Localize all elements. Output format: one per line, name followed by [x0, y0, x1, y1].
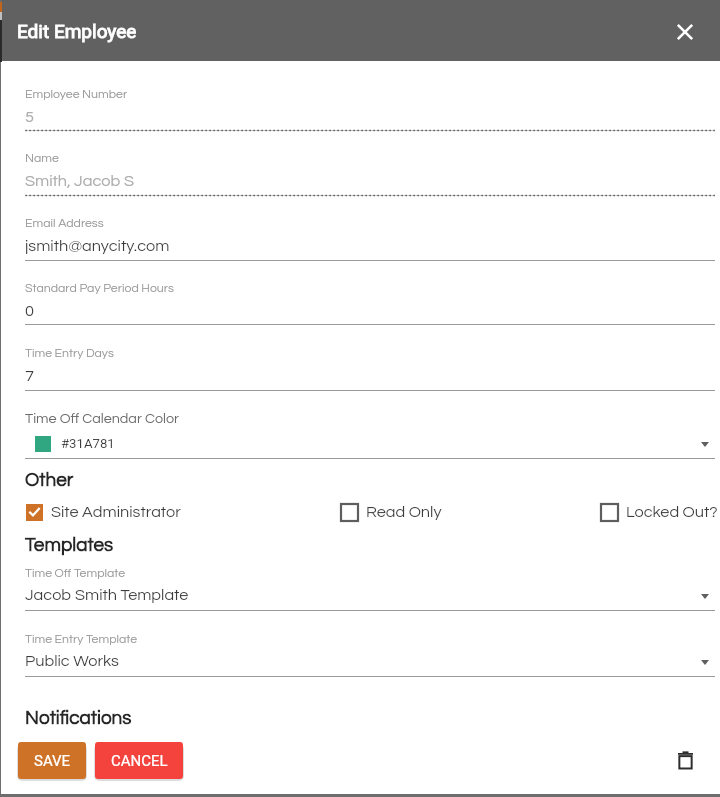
staticText: Edit Employee: [17, 20, 137, 42]
button[interactable]: [25, 561, 715, 614]
button[interactable]: [25, 341, 715, 394]
button[interactable]: Read Only: [341, 504, 444, 521]
staticText: Templates: [25, 535, 114, 555]
staticText: Email Address: [25, 217, 104, 230]
button[interactable]: Delete: [667, 742, 703, 778]
staticText: Time Off Template: [25, 567, 126, 580]
button[interactable]: [25, 82, 715, 134]
staticText: Public Works: [25, 653, 119, 670]
staticText: 5: [25, 109, 34, 126]
staticText: Locked Out?: [626, 504, 718, 521]
staticText: jsmith@anycity.com: [25, 238, 170, 255]
button[interactable]: SAVE: [18, 742, 86, 779]
staticText: Smith, Jacob S: [25, 173, 135, 190]
staticText: Time Entry Days: [25, 347, 114, 360]
button[interactable]: [25, 627, 715, 680]
button[interactable]: Close: [670, 17, 700, 47]
staticText: Time Entry Template: [25, 633, 138, 646]
button[interactable]: CANCEL: [95, 742, 183, 779]
staticText: 0: [25, 303, 34, 320]
staticText: Name: [25, 152, 59, 165]
staticText: Other: [25, 470, 74, 490]
staticText: Jacob Smith Template: [25, 587, 189, 604]
staticText: Employee Number: [25, 88, 128, 101]
staticText: #31A781: [61, 436, 115, 451]
button[interactable]: [25, 404, 715, 462]
staticText: Read Only: [366, 504, 442, 521]
button[interactable]: Locked Out?: [601, 504, 720, 521]
staticText: Time Off Calendar Color: [25, 411, 180, 426]
staticText: Notifications: [25, 708, 132, 728]
staticText: SAVE: [34, 752, 71, 770]
button[interactable]: Site Administrator: [26, 504, 183, 521]
staticText: CANCEL: [111, 752, 168, 770]
button[interactable]: [25, 276, 715, 328]
button[interactable]: [25, 211, 715, 264]
staticText: Standard Pay Period Hours: [25, 282, 174, 295]
button[interactable]: [25, 146, 715, 199]
staticText: 7: [25, 368, 34, 385]
staticText: Site Administrator: [51, 504, 181, 521]
